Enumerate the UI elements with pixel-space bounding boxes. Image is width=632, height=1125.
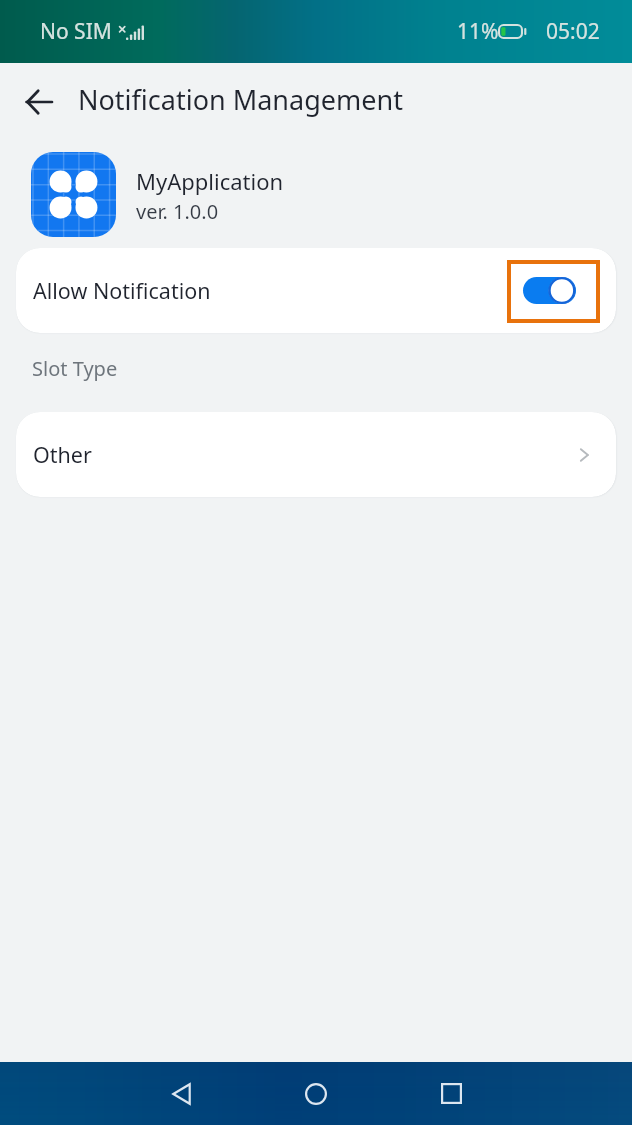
staticText: Other xyxy=(33,440,92,469)
staticText: No SIM xyxy=(40,17,112,46)
staticText: Slot Type xyxy=(32,355,118,382)
button[interactable]: Recents xyxy=(415,1062,487,1125)
staticText: ver. 1.0.0 xyxy=(136,198,219,225)
staticText: 05:02 xyxy=(546,17,600,46)
staticText: Allow Notification xyxy=(33,276,211,305)
button[interactable]: Back xyxy=(145,1062,217,1125)
button[interactable]: Other xyxy=(16,412,616,497)
staticText: 11% xyxy=(457,17,499,46)
button[interactable]: Allow Notification toggle xyxy=(507,260,600,323)
staticText: MyApplication xyxy=(136,166,284,196)
staticText: Notification Management xyxy=(78,81,403,118)
button[interactable]: Back xyxy=(15,78,63,126)
button[interactable]: Home xyxy=(280,1062,352,1125)
